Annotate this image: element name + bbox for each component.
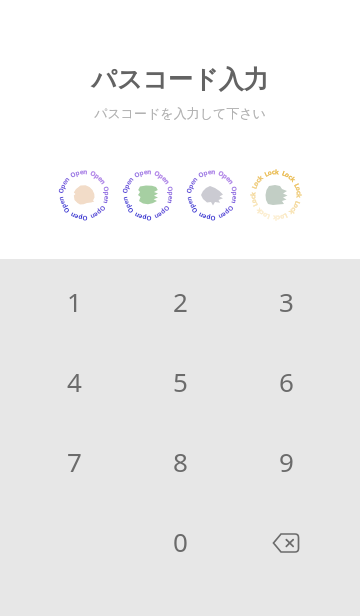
staticText: パスコードを入力して下さい: [0, 105, 360, 121]
staticText: 1: [67, 284, 82, 319]
staticText: 8: [173, 444, 188, 479]
staticText: 6: [279, 364, 294, 399]
staticText: 5: [173, 364, 188, 399]
button[interactable]: 5: [127, 341, 233, 421]
button[interactable]: Open: [52, 163, 116, 227]
button[interactable]: 1: [21, 261, 127, 341]
staticText: 9: [279, 444, 294, 479]
button[interactable]: 7: [21, 421, 127, 501]
button[interactable]: 8: [127, 421, 233, 501]
staticText: 2: [173, 284, 188, 319]
button[interactable]: Backspace: [233, 501, 339, 581]
staticText: 4: [67, 364, 82, 399]
staticText: 0: [173, 524, 188, 559]
button[interactable]: 6: [233, 341, 339, 421]
button[interactable]: 9: [233, 421, 339, 501]
staticText: パスコード入力: [0, 64, 360, 95]
button[interactable]: Lock: [244, 163, 308, 227]
button[interactable]: Open: [180, 163, 244, 227]
staticText: 7: [67, 444, 82, 479]
other: Backspace: [271, 528, 301, 554]
button[interactable]: 0: [127, 501, 233, 581]
button[interactable]: 2: [127, 261, 233, 341]
staticText: 3: [279, 284, 294, 319]
button[interactable]: 3: [233, 261, 339, 341]
button[interactable]: 4: [21, 341, 127, 421]
button[interactable]: Open: [116, 163, 180, 227]
